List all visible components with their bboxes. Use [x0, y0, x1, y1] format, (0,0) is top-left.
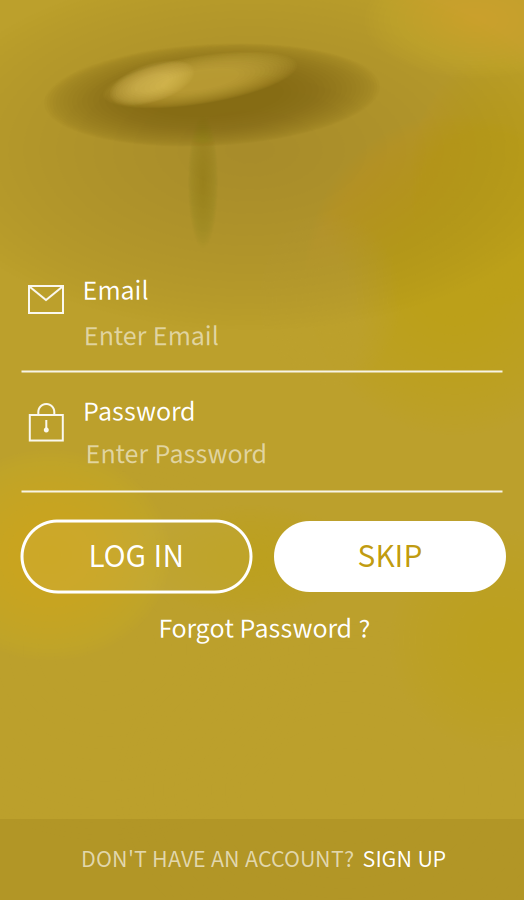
staticText: Forgot Password ?: [158, 609, 370, 649]
button[interactable]: SKIP: [274, 521, 506, 592]
button[interactable]: Forgot Password ?: [134, 607, 394, 651]
button[interactable]: Email: [0, 255, 524, 365]
staticText: SIGN UP: [362, 842, 446, 877]
staticText: SKIP: [357, 533, 422, 580]
staticText: Password: [83, 392, 196, 432]
staticText: Email: [82, 271, 148, 311]
staticText: Enter Email: [84, 317, 219, 357]
staticText: DON'T HAVE AN ACCOUNT?: [81, 842, 354, 877]
button[interactable]: DON'T HAVE AN ACCOUNT?: [0, 819, 524, 900]
button[interactable]: Password: [0, 375, 524, 485]
staticText: Enter Password: [86, 435, 268, 474]
button[interactable]: LOG IN: [22, 521, 251, 592]
staticText: LOG IN: [88, 533, 184, 580]
